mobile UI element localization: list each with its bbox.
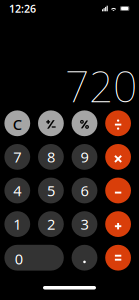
button[interactable]: Plus minus — [38, 110, 64, 136]
staticText: C — [13, 115, 22, 134]
staticText: 4 — [13, 181, 21, 200]
staticText: 0 — [15, 249, 23, 268]
button[interactable]: 3 — [72, 211, 97, 237]
button[interactable]: 5 — [38, 178, 64, 203]
staticText: 7 — [13, 147, 21, 167]
button[interactable]: Multiply — [105, 144, 131, 170]
staticText: 720 — [65, 57, 137, 114]
button[interactable]: Equals — [105, 245, 131, 271]
staticText: 3 — [80, 214, 88, 234]
button[interactable]: 1 — [4, 211, 30, 237]
button[interactable]: 2 — [38, 211, 64, 237]
staticText: 12:26 — [9, 1, 36, 16]
button[interactable]: Plus — [105, 211, 131, 237]
staticText: 5 — [47, 181, 55, 200]
button[interactable]: Divide — [105, 110, 131, 136]
button[interactable]: Decimal point — [72, 245, 97, 271]
button[interactable]: 6 — [72, 178, 97, 203]
button[interactable]: 4 — [4, 178, 30, 203]
staticText: 9 — [80, 147, 88, 167]
button[interactable]: Percent — [72, 110, 97, 136]
button[interactable]: Minus — [105, 178, 131, 203]
staticText: 2 — [47, 214, 55, 234]
staticText: 1 — [13, 214, 21, 234]
button[interactable]: 7 — [4, 144, 30, 170]
staticText: 8 — [47, 147, 55, 167]
button[interactable]: C — [4, 110, 30, 136]
staticText: 6 — [80, 181, 88, 200]
button[interactable]: 8 — [38, 144, 64, 170]
button[interactable]: 9 — [72, 144, 97, 170]
button[interactable]: 0 — [4, 245, 64, 271]
